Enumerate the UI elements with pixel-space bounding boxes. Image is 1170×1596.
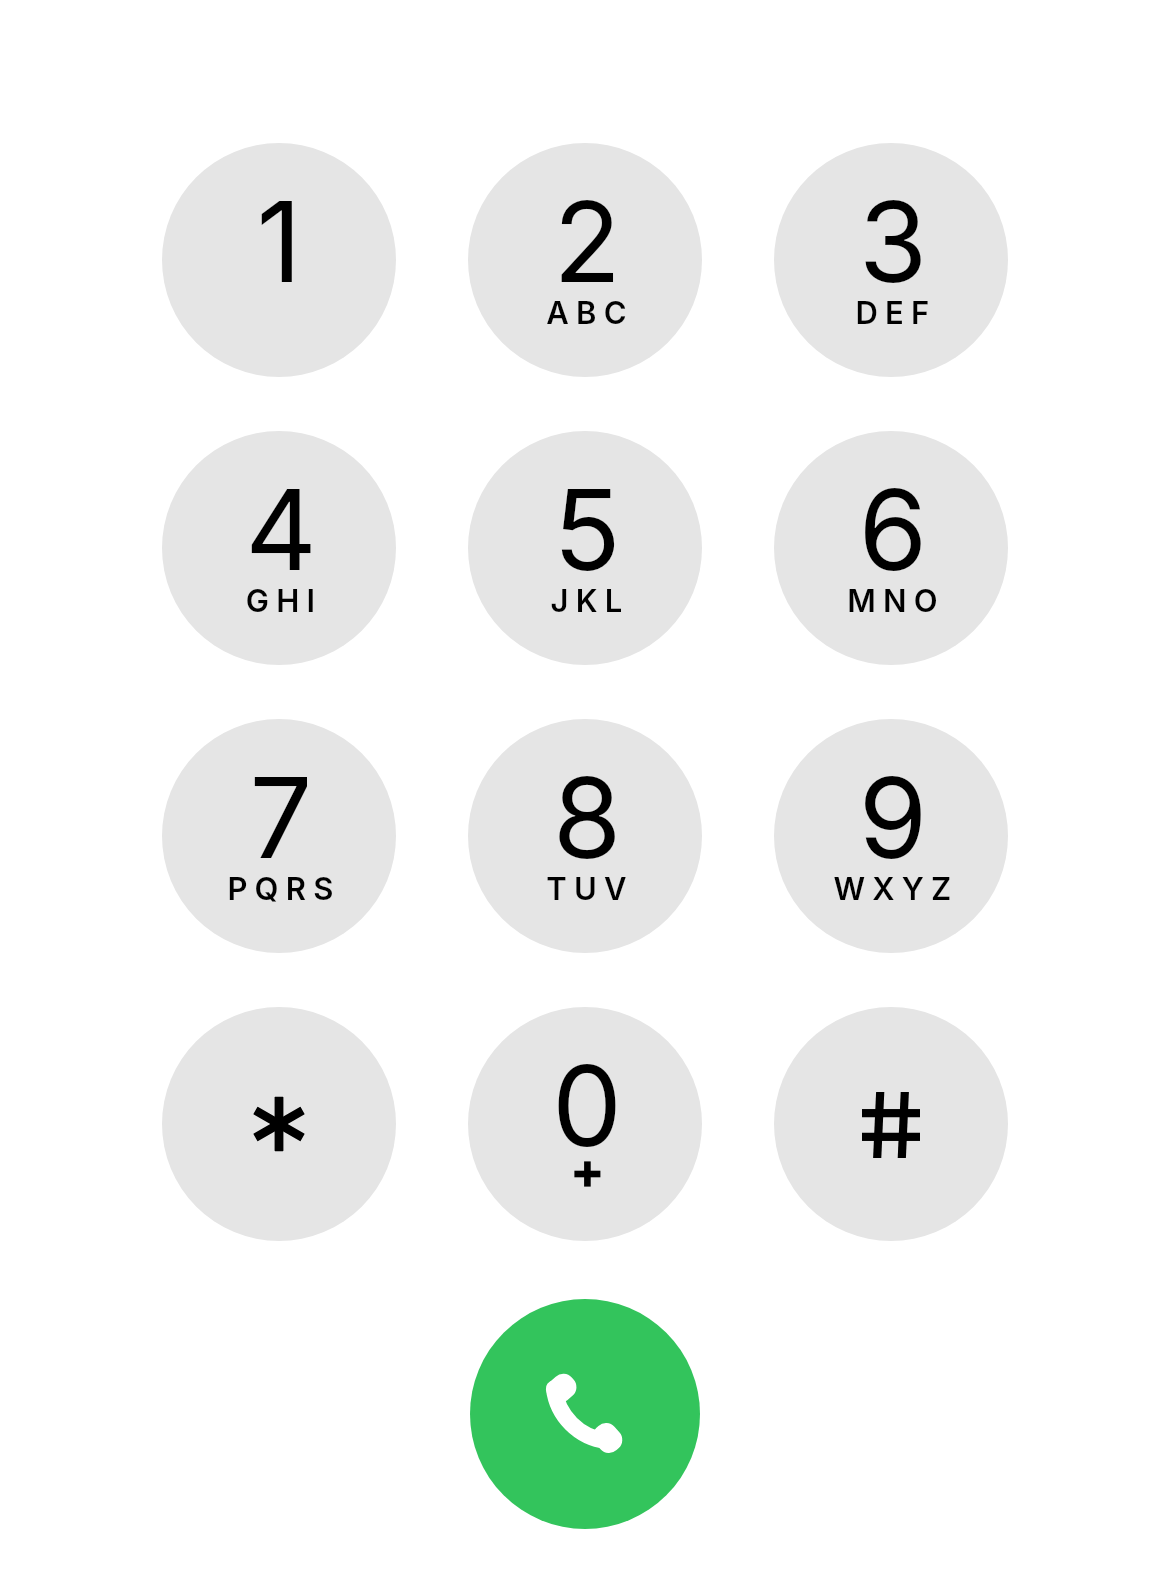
button[interactable]: 4 GHI	[162, 431, 396, 665]
staticText: TUV	[473, 870, 702, 908]
button[interactable]: Call	[470, 1299, 700, 1529]
staticText: PQRS	[167, 870, 396, 908]
staticText: 7	[164, 750, 396, 884]
staticText: JKL	[473, 582, 702, 620]
button[interactable]: pound	[774, 1007, 1008, 1241]
button[interactable]: 3 DEF	[774, 143, 1008, 377]
staticText: 2	[470, 174, 702, 308]
staticText: DEF	[779, 294, 1008, 332]
staticText: ABC	[473, 294, 702, 332]
staticText: 6	[776, 462, 1008, 596]
button[interactable]: 2 ABC	[468, 143, 702, 377]
staticText: GHI	[167, 582, 396, 620]
staticText: 4	[164, 462, 396, 596]
staticText: 1	[162, 174, 396, 308]
button[interactable]: 0 plus	[468, 1007, 702, 1241]
staticText: MNO	[779, 582, 1008, 620]
staticText: 0	[470, 1038, 702, 1172]
button[interactable]: 8 TUV	[468, 719, 702, 953]
staticText: 8	[470, 750, 702, 884]
staticText: 5	[470, 462, 702, 596]
button[interactable]: 7 PQRS	[162, 719, 396, 953]
button[interactable]: 6 MNO	[774, 431, 1008, 665]
button[interactable]: 9 WXYZ	[774, 719, 1008, 953]
staticText: WXYZ	[779, 870, 1008, 908]
staticText: 9	[776, 750, 1008, 884]
button[interactable]: 5 JKL	[468, 431, 702, 665]
staticText: 3	[776, 174, 1008, 308]
button[interactable]: 1	[162, 143, 396, 377]
button[interactable]: star	[162, 1007, 396, 1241]
